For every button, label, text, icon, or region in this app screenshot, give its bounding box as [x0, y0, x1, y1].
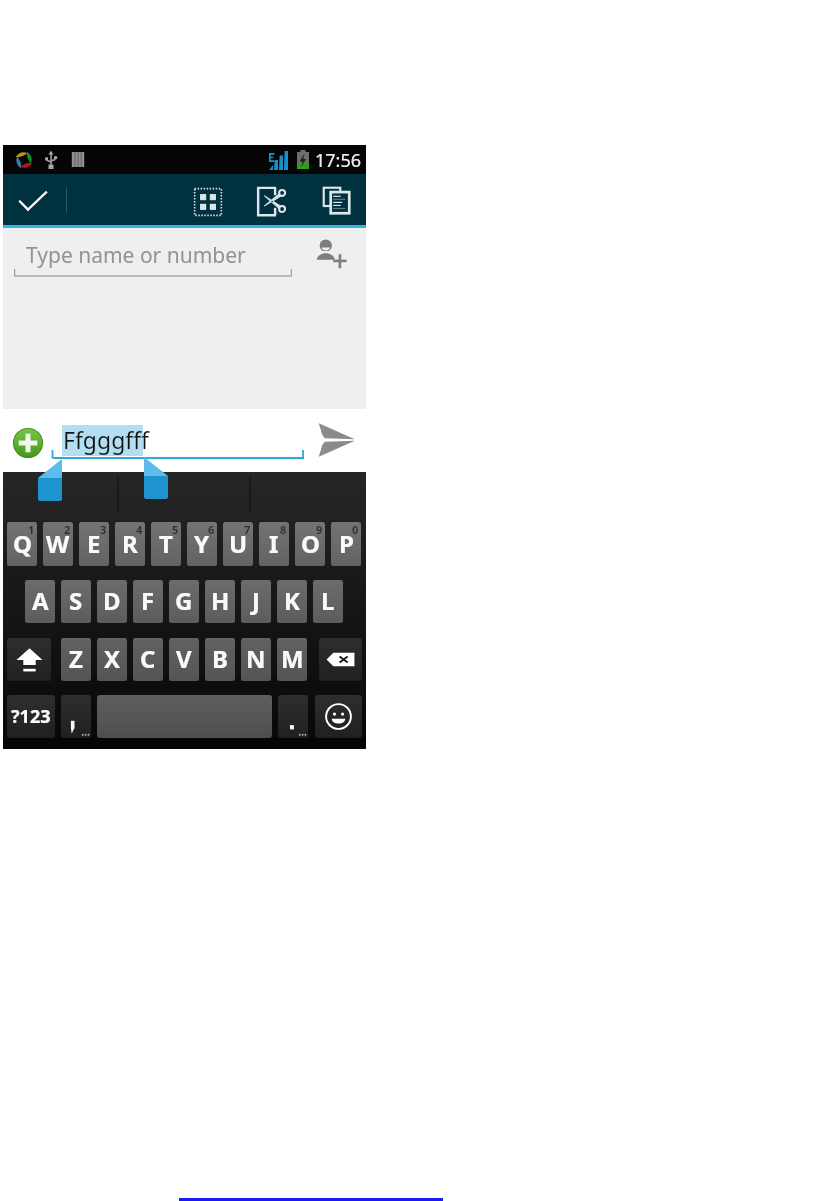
button[interactable]: Copy: [310, 175, 362, 226]
button[interactable]: Space: [97, 695, 272, 738]
staticText: W: [46, 527, 70, 560]
button[interactable]: Comma: [61, 695, 91, 738]
button[interactable]: Period: [278, 695, 308, 738]
button[interactable]: Select all: [180, 176, 235, 227]
staticText: Q: [13, 527, 32, 560]
staticText: 2: [64, 522, 71, 537]
staticText: Ffgggfff: [63, 424, 150, 455]
staticText: 4: [136, 522, 143, 537]
staticText: 3: [100, 522, 107, 537]
staticText: 6: [208, 522, 215, 537]
staticText: N: [246, 642, 266, 675]
button[interactable]: Emoji: [315, 695, 362, 738]
staticText: ?123: [11, 704, 51, 729]
button[interactable]: M: [277, 638, 307, 681]
staticText: Y: [194, 527, 210, 560]
staticText: 9: [316, 522, 323, 537]
staticText: X: [104, 642, 121, 675]
staticText: C: [140, 642, 156, 675]
button[interactable]: F: [133, 580, 163, 623]
staticText: I: [269, 527, 279, 560]
staticText: E: [87, 527, 101, 560]
staticText: 7: [244, 522, 251, 537]
button[interactable]: Suggestion 1: [3, 472, 118, 517]
button[interactable]: Y: [187, 522, 217, 566]
staticText: 8: [280, 522, 287, 537]
staticText: A: [32, 584, 49, 617]
button[interactable]: E: [79, 522, 109, 566]
button[interactable]: X: [97, 638, 127, 681]
button[interactable]: Done: [4, 174, 62, 225]
staticText: B: [212, 642, 228, 675]
staticText: 17:56: [315, 148, 362, 173]
button[interactable]: K: [277, 580, 307, 623]
button[interactable]: D: [97, 580, 127, 623]
button[interactable]: I: [259, 522, 289, 566]
button[interactable]: N: [241, 638, 271, 681]
button[interactable]: G: [169, 580, 199, 623]
button[interactable]: T: [151, 522, 181, 566]
staticText: P: [339, 527, 354, 560]
staticText: R: [122, 527, 138, 560]
staticText: 5: [172, 522, 179, 537]
staticText: U: [229, 527, 248, 560]
staticText: G: [175, 584, 193, 617]
button[interactable]: Add attachment: [7, 422, 49, 464]
button[interactable]: Cut: [245, 176, 299, 227]
staticText: Z: [69, 642, 83, 675]
button[interactable]: Ffgggfff: [51, 414, 304, 459]
button[interactable]: L: [313, 580, 343, 623]
staticText: J: [252, 584, 260, 617]
button[interactable]: W: [43, 522, 73, 566]
staticText: L: [321, 584, 335, 617]
staticText: O: [301, 527, 320, 560]
staticText: T: [159, 527, 173, 560]
button[interactable]: H: [205, 580, 235, 623]
button[interactable]: S: [61, 580, 91, 623]
button[interactable]: Q: [7, 522, 37, 566]
button[interactable]: R: [115, 522, 145, 566]
staticText: 1: [28, 522, 35, 537]
button[interactable]: ?123: [7, 695, 55, 738]
staticText: K: [284, 584, 300, 617]
staticText: S: [69, 584, 83, 617]
button[interactable]: P: [331, 522, 361, 566]
button[interactable]: V: [169, 638, 199, 681]
button[interactable]: A: [25, 580, 55, 623]
button[interactable]: Shift: [7, 638, 51, 681]
staticText: V: [176, 642, 192, 675]
staticText: M: [281, 642, 304, 675]
button[interactable]: Backspace: [319, 638, 362, 681]
button[interactable]: J: [241, 580, 271, 623]
button[interactable]: U: [223, 522, 253, 566]
button[interactable]: Type name or number: [14, 232, 296, 278]
staticText: D: [103, 584, 121, 617]
staticText: H: [211, 584, 230, 617]
staticText: Type name or number: [26, 241, 246, 270]
button[interactable]: Suggestion 2: [119, 472, 250, 517]
staticText: 0: [352, 522, 359, 537]
button[interactable]: O: [295, 522, 325, 566]
button[interactable]: B: [205, 638, 235, 681]
staticText: F: [141, 584, 155, 617]
button[interactable]: C: [133, 638, 163, 681]
button[interactable]: Z: [61, 638, 91, 681]
button[interactable]: Send: [310, 416, 362, 464]
button[interactable]: Add contact: [307, 232, 357, 280]
